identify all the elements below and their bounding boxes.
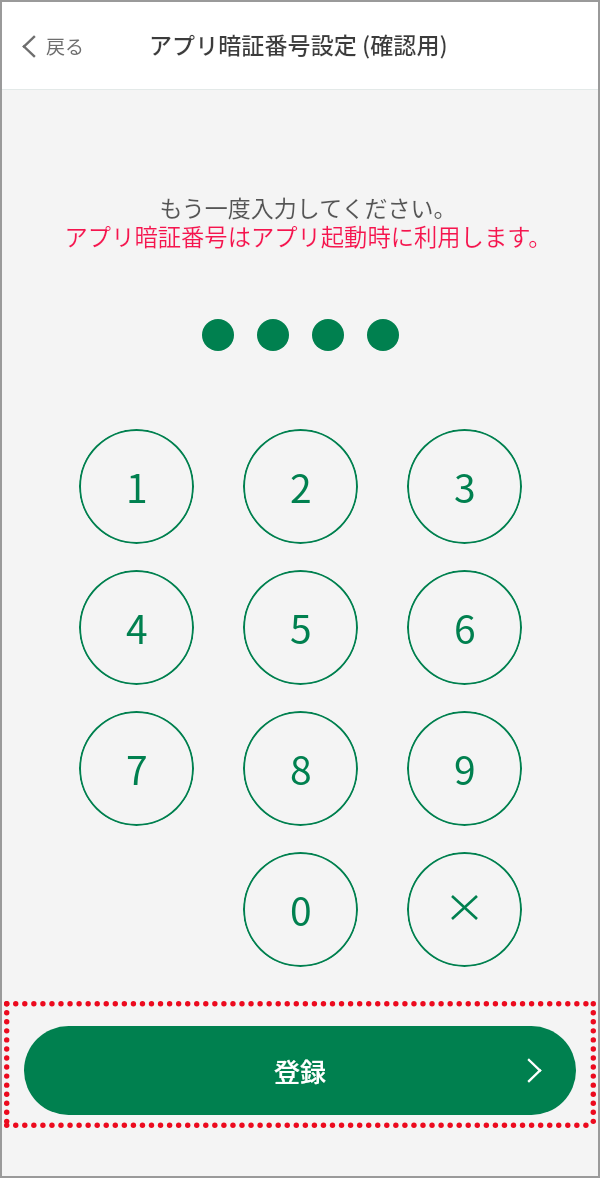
button[interactable]: 登録 [24,1026,576,1115]
button[interactable]: Delete [407,852,522,967]
button[interactable]: 8 [243,711,358,826]
button[interactable]: 1 [79,429,194,544]
staticText: アプリ暗証番号はアプリ起動時に利用します。 [10,219,600,253]
button[interactable]: 戻る [2,22,101,70]
staticText: 0 [290,881,312,937]
button[interactable]: 6 [407,570,522,685]
button[interactable]: 7 [79,711,194,826]
button[interactable]: 3 [407,429,522,544]
other: Next [529,1060,540,1081]
staticText: 4 [126,599,148,655]
button[interactable]: 9 [407,711,522,826]
staticText: 7 [126,740,148,796]
staticText: 6 [454,599,476,655]
button[interactable]: 2 [243,429,358,544]
staticText: 9 [454,740,476,796]
staticText: アプリ暗証番号設定 (確認用) [149,27,448,60]
staticText: 5 [290,599,312,655]
button[interactable]: 4 [79,570,194,685]
staticText: 8 [290,740,312,796]
button[interactable]: 5 [243,570,358,685]
staticText: 3 [454,458,476,514]
staticText: 登録 [274,1052,327,1090]
button[interactable]: 0 [243,852,358,967]
staticText: 戻る [46,32,85,60]
staticText: 1 [126,458,148,514]
staticText: もう一度入力してください。 [10,190,600,223]
staticText: 2 [290,458,312,514]
